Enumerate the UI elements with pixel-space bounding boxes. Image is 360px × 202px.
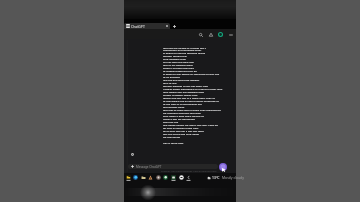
button[interactable]: Microsoft Edge [133, 175, 138, 181]
button[interactable]: Voice input [219, 163, 227, 171]
button[interactable]: More options [227, 31, 234, 38]
button[interactable]: Blender [148, 175, 153, 181]
button[interactable]: Settings [156, 175, 161, 181]
button[interactable]: Read aloud [129, 151, 135, 157]
button[interactable]: Folder [141, 175, 146, 181]
button[interactable]: Tracking protection [207, 31, 214, 38]
staticText: here we are locked in a dying era s comp… [163, 46, 243, 145]
button[interactable]: 13°C [207, 175, 244, 180]
button[interactable]: Message ChatGPT [128, 164, 218, 169]
staticText: Mostly cloudy [222, 175, 244, 180]
button[interactable]: New tab [171, 23, 177, 29]
button[interactable]: Search [197, 31, 204, 38]
button[interactable]: Account [217, 31, 224, 38]
button[interactable]: File Explorer [126, 175, 131, 181]
staticText: Message ChatGPT [136, 165, 162, 169]
button[interactable]: Excel [171, 175, 176, 181]
staticText: ChatGPT can make mistakes. Check importa… [161, 169, 217, 172]
button[interactable]: Zoom [179, 175, 184, 181]
button[interactable]: Close tab [165, 24, 169, 28]
button[interactable]: ChatGPT [124, 23, 170, 29]
button[interactable]: Notes [186, 175, 191, 181]
staticText: 13°C [212, 175, 220, 180]
button[interactable]: Spotify [163, 175, 168, 181]
staticText: ChatGPT [131, 24, 145, 29]
